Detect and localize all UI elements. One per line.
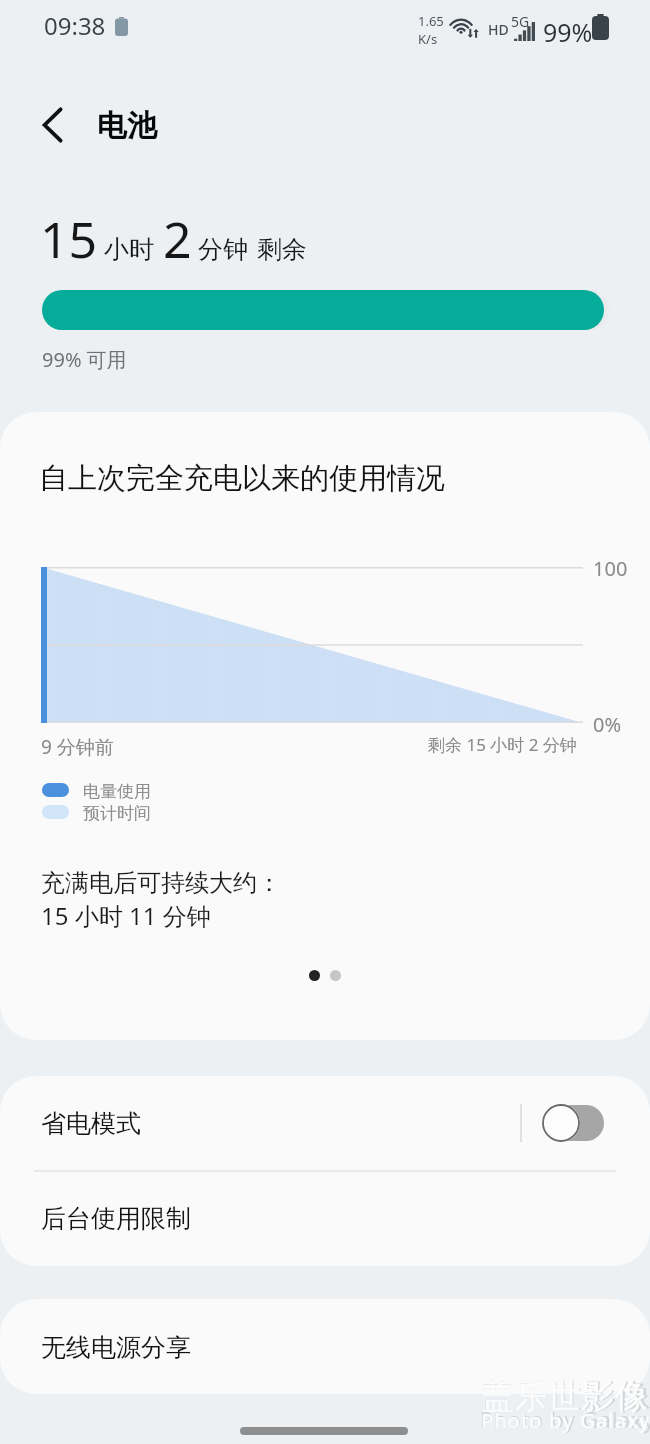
staticText: HD [488, 20, 509, 39]
button[interactable]: 省电模式 [0, 1076, 650, 1170]
staticText: 预计时间 [83, 803, 151, 824]
staticText: 0% [593, 711, 622, 738]
staticText: 2 [163, 205, 192, 273]
staticText: 9 分钟前 [41, 734, 114, 760]
staticText: 剩余 [257, 234, 307, 265]
staticText: 15 小时 11 分钟 [41, 899, 211, 932]
staticText: 后台使用限制 [41, 1203, 191, 1234]
staticText: 盖乐世影像 [481, 1376, 649, 1418]
button[interactable]: 后台使用限制 [0, 1172, 650, 1266]
staticText: Photo by Galaxy [481, 1407, 650, 1434]
staticText: 5G [511, 12, 530, 31]
staticText: 分钟 [198, 234, 248, 265]
button[interactable]: 省电模式 [542, 1103, 604, 1143]
staticText: 电量使用 [83, 781, 151, 802]
staticText: K/s [418, 30, 438, 48]
staticText: 省电模式 [41, 1108, 141, 1139]
staticText: 电池 [97, 107, 157, 145]
button[interactable]: Back [22, 94, 84, 156]
staticText: 小时 [104, 234, 154, 265]
staticText: 99% 可用 [42, 346, 127, 373]
staticText: Photo by Galaxy [480, 1406, 650, 1435]
staticText: 1.65 [418, 12, 444, 30]
staticText: 自上次完全充电以来的使用情况 [39, 460, 445, 497]
staticText: 100 [593, 555, 628, 582]
staticText: 09:38 [44, 9, 106, 42]
staticText: 充满电后可持续大约： [41, 868, 281, 898]
staticText: 无线电源分享 [41, 1332, 191, 1363]
button[interactable]: 无线电源分享 [0, 1299, 650, 1394]
staticText: 盖乐世影像 [480, 1375, 650, 1418]
staticText: 99% [543, 15, 593, 49]
staticText: 剩余 15 小时 2 分钟 [428, 733, 577, 756]
staticText: 15 [40, 205, 98, 273]
